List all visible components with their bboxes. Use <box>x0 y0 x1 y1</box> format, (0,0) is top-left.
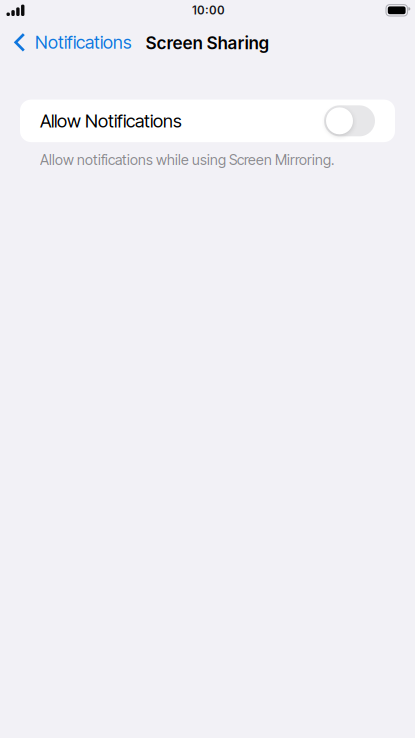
staticText: Screen Sharing <box>145 33 269 53</box>
button[interactable]: Allow Notifications <box>20 100 395 142</box>
staticText: Notifications <box>35 31 131 53</box>
button[interactable]: Notifications <box>0 22 139 56</box>
toggle[interactable]: Allow Notifications <box>324 105 375 136</box>
staticText: Allow Notifications <box>40 110 182 132</box>
navigationBar: Screen Sharing <box>0 22 415 56</box>
staticText: Allow notifications while using Screen M… <box>40 151 334 168</box>
staticText: 10:00 <box>192 3 225 17</box>
